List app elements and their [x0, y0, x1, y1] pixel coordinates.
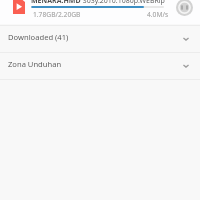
staticText: Downloaded (41) [8, 32, 69, 42]
button[interactable]: MENARA.HMD [0, 0, 200, 24]
button[interactable]: Downloaded (41) [0, 26, 200, 52]
staticText: 1.78GB/2.20GB [33, 10, 81, 19]
staticText: 4.0M/s [147, 10, 169, 19]
button[interactable]: Pause download [176, 0, 193, 16]
staticText: MENARA.HMD [31, 0, 81, 6]
button[interactable]: Zona Unduhan [0, 53, 200, 79]
staticText: Zona Unduhan [8, 59, 62, 69]
staticText: S03y.2010.1080p.WEBRip [81, 0, 165, 6]
